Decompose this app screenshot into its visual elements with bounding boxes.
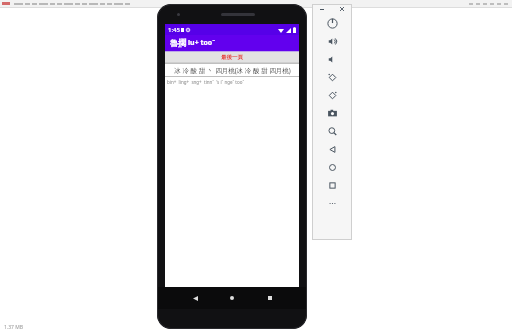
- button[interactable]: Home: [312, 158, 352, 176]
- staticText: 1.37 MB: [4, 324, 24, 331]
- button[interactable]: Rotate right: [312, 86, 352, 104]
- button[interactable]: Home: [224, 290, 240, 306]
- button[interactable]: Recent apps: [262, 290, 278, 306]
- button[interactable]: bin+ ling+ sng+ tinnˉ ’s iˉ ngeˉ tooˉ: [165, 77, 299, 86]
- button[interactable]: Back: [312, 140, 352, 158]
- button[interactable]: Back: [187, 290, 203, 306]
- staticText: 最後一頁: [221, 54, 243, 61]
- button[interactable]: Volume down: [312, 50, 352, 68]
- button[interactable]: Power: [312, 14, 352, 32]
- button[interactable]: Overview: [312, 176, 352, 194]
- staticText: lu+ tooˉ: [188, 38, 216, 48]
- button[interactable]: 最後一頁: [165, 51, 299, 63]
- staticText: 魯擱: [170, 38, 186, 48]
- button[interactable]: Minimize: [318, 5, 326, 13]
- button[interactable]: 冰 冷 酸 甜 丶 四月桃(冰 冷 酸 甜 四月桃): [165, 63, 299, 77]
- staticText: 冰 冷 酸 甜 丶 四月桃(冰 冷 酸 甜 四月桃): [174, 66, 291, 75]
- button[interactable]: Take screenshot: [312, 104, 352, 122]
- button[interactable]: Volume up: [312, 32, 352, 50]
- button[interactable]: More: [312, 194, 352, 212]
- button[interactable]: Zoom: [312, 122, 352, 140]
- button[interactable]: Rotate left: [312, 68, 352, 86]
- staticText: 1:45: [168, 26, 180, 34]
- staticText: bin+ ling+ sng+ tinnˉ ’s iˉ ngeˉ tooˉ: [167, 79, 245, 85]
- button[interactable]: 魯擱: [165, 35, 299, 51]
- button[interactable]: Close: [338, 5, 346, 13]
